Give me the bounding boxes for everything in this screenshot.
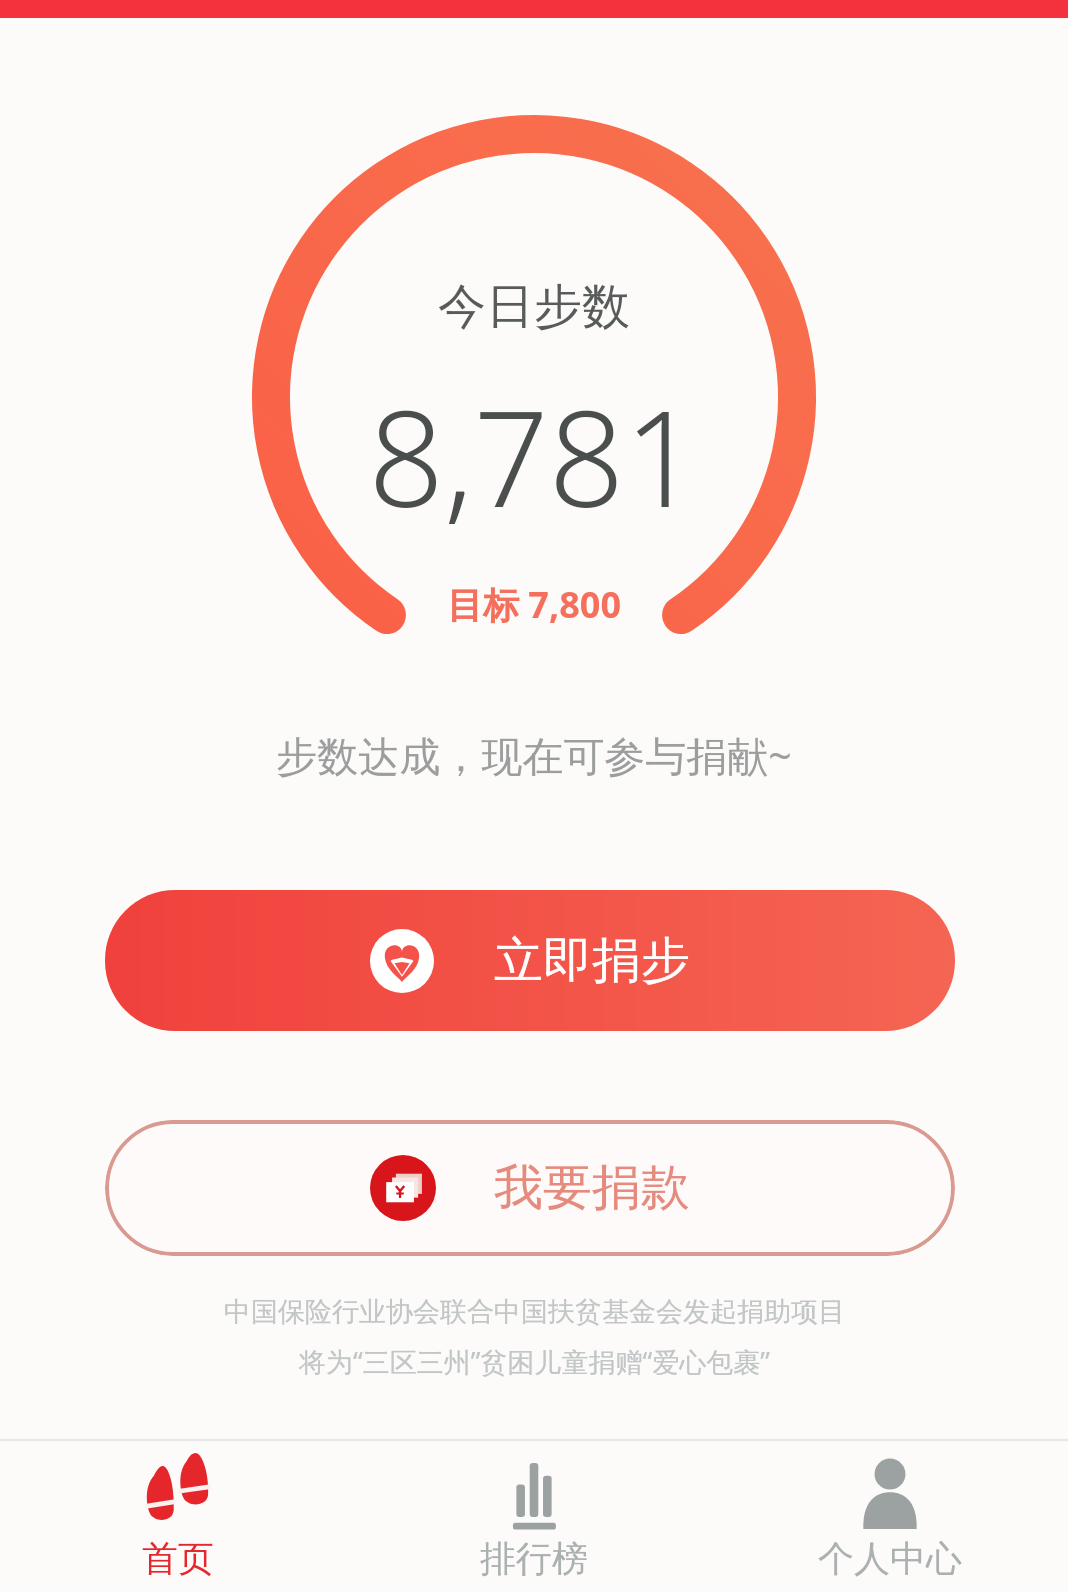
button[interactable]: 首页 [0,1438,356,1592]
staticText: 今日步数 [438,277,630,337]
staticText: 将为“三区三州”贫困儿童捐赠“爱心包裹” [299,1343,770,1380]
staticText: 中国保险行业协会联合中国扶贫基金会发起捐助项目 [224,1295,845,1329]
staticText: 8,781 [368,366,700,546]
staticText: 个人中心 [818,1536,962,1581]
staticText: 步数达成，现在可参与捐献~ [276,727,792,783]
button[interactable]: 个人中心 [712,1438,1068,1592]
button[interactable]: 立即捐步 [105,890,955,1031]
button[interactable]: 排行榜 [356,1438,712,1592]
staticText: 首页 [142,1536,214,1581]
staticText: 立即捐步 [494,930,690,992]
button[interactable]: 我要捐款 [105,1120,955,1256]
staticText: 排行榜 [480,1536,588,1581]
staticText: 目标 7,800 [447,580,621,629]
staticText: 我要捐款 [494,1157,690,1219]
